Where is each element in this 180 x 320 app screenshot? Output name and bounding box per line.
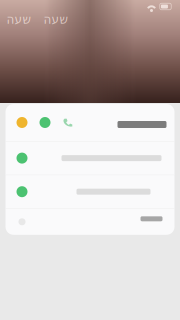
button[interactable] (5, 175, 174, 208)
staticText: שעה (6, 13, 31, 26)
button[interactable] (136, 214, 166, 229)
staticText: שעה (43, 13, 68, 26)
button[interactable] (5, 142, 174, 175)
button[interactable] (5, 104, 174, 141)
